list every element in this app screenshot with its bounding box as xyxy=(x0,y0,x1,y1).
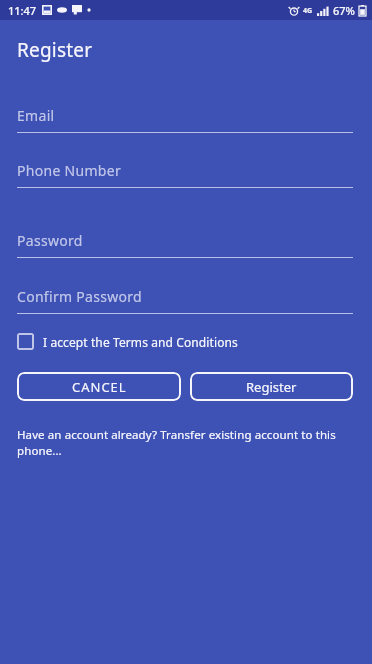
button[interactable]: CANCEL xyxy=(17,372,181,401)
staticText: Password xyxy=(17,231,83,250)
button[interactable]: Phone Number xyxy=(17,161,353,188)
staticText: I accept the Terms and Conditions xyxy=(43,334,238,350)
staticText: 11:47 xyxy=(8,3,37,18)
staticText: Confirm Password xyxy=(17,287,143,306)
other: Accept terms checkbox xyxy=(17,333,34,350)
button[interactable]: Accept terms checkbox xyxy=(17,333,238,350)
staticText: 67% xyxy=(333,3,355,18)
button[interactable]: Password xyxy=(17,231,353,258)
button[interactable]: Have an account already? Transfer existi… xyxy=(17,427,353,458)
staticText: Email xyxy=(17,106,55,125)
button[interactable]: Confirm Password xyxy=(17,287,353,314)
button[interactable]: Register xyxy=(190,372,353,401)
button[interactable]: Email xyxy=(17,106,353,133)
staticText: 4G xyxy=(303,6,313,16)
staticText: Register xyxy=(246,378,297,396)
staticText: Register xyxy=(17,37,93,63)
staticText: Phone Number xyxy=(17,161,122,180)
staticText: CANCEL xyxy=(72,378,127,396)
